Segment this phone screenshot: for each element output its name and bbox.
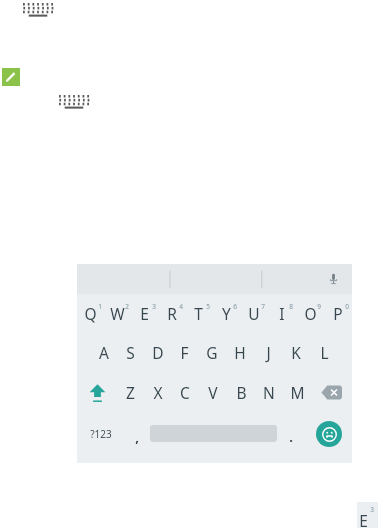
staticText: G: [206, 342, 218, 363]
staticText: E: [140, 303, 149, 324]
staticText: ,: [135, 428, 139, 446]
staticText: U: [248, 303, 260, 324]
staticText: Z: [126, 382, 135, 403]
button[interactable]: B: [227, 372, 255, 413]
button[interactable]: Q: [77, 294, 104, 333]
staticText: V: [208, 382, 218, 403]
button[interactable]: G: [198, 333, 226, 372]
button[interactable]: K: [282, 333, 310, 372]
staticText: 2: [125, 302, 129, 311]
staticText: K: [291, 342, 301, 363]
button[interactable]: Shift: [77, 372, 117, 413]
staticText: F: [180, 342, 189, 363]
staticText: L: [320, 342, 329, 363]
button[interactable]: .: [277, 413, 305, 454]
button[interactable]: P: [324, 294, 352, 333]
staticText: ?123: [90, 427, 112, 441]
button[interactable]: D: [144, 333, 171, 372]
staticText: B: [236, 382, 247, 403]
staticText: Q: [84, 303, 97, 324]
staticText: N: [263, 382, 275, 403]
staticText: T: [194, 303, 203, 324]
button[interactable]: E: [131, 294, 158, 333]
staticText: R: [167, 303, 177, 324]
button[interactable]: Edit: [2, 68, 20, 86]
button[interactable]: X: [144, 372, 171, 413]
staticText: 0: [345, 302, 349, 311]
staticText: 5: [206, 302, 210, 311]
staticText: 4: [179, 302, 183, 311]
staticText: D: [152, 342, 164, 363]
button[interactable]: I: [268, 294, 296, 333]
button[interactable]: Emoji: [316, 421, 342, 447]
button[interactable]: ?123: [77, 413, 124, 454]
staticText: 7: [261, 302, 265, 311]
button[interactable]: Voice input: [322, 268, 344, 290]
staticText: J: [266, 342, 271, 363]
staticText: 3: [370, 505, 374, 514]
staticText: E: [359, 510, 368, 528]
button[interactable]: ,: [124, 413, 150, 454]
button[interactable]: O: [296, 294, 324, 333]
button[interactable]: J: [254, 333, 282, 372]
staticText: W: [110, 303, 125, 324]
button[interactable]: R: [158, 294, 185, 333]
button[interactable]: Backspace: [311, 372, 352, 413]
button[interactable]: A: [90, 333, 117, 372]
staticText: P: [333, 303, 343, 324]
staticText: X: [153, 382, 163, 403]
staticText: 8: [289, 302, 293, 311]
staticText: A: [99, 342, 109, 363]
staticText: 6: [233, 302, 237, 311]
staticText: Y: [222, 303, 231, 324]
button[interactable]: Z: [117, 372, 144, 413]
staticText: C: [180, 382, 190, 403]
staticText: I: [279, 303, 285, 324]
staticText: 3: [152, 302, 156, 311]
button[interactable]: S: [117, 333, 144, 372]
button[interactable]: T: [185, 294, 212, 333]
staticText: .: [289, 428, 293, 446]
staticText: O: [304, 303, 317, 324]
button[interactable]: M: [283, 372, 311, 413]
button[interactable]: N: [255, 372, 283, 413]
button[interactable]: U: [240, 294, 268, 333]
button[interactable]: F: [171, 333, 198, 372]
button[interactable]: C: [171, 372, 199, 413]
staticText: 9: [317, 302, 321, 311]
button[interactable]: W: [104, 294, 131, 333]
staticText: 1: [98, 302, 102, 311]
staticText: S: [126, 342, 135, 363]
button[interactable]: L: [310, 333, 338, 372]
button[interactable]: Y: [212, 294, 240, 333]
button[interactable]: V: [199, 372, 227, 413]
staticText: M: [290, 382, 305, 403]
button[interactable]: H: [226, 333, 254, 372]
staticText: H: [234, 342, 246, 363]
